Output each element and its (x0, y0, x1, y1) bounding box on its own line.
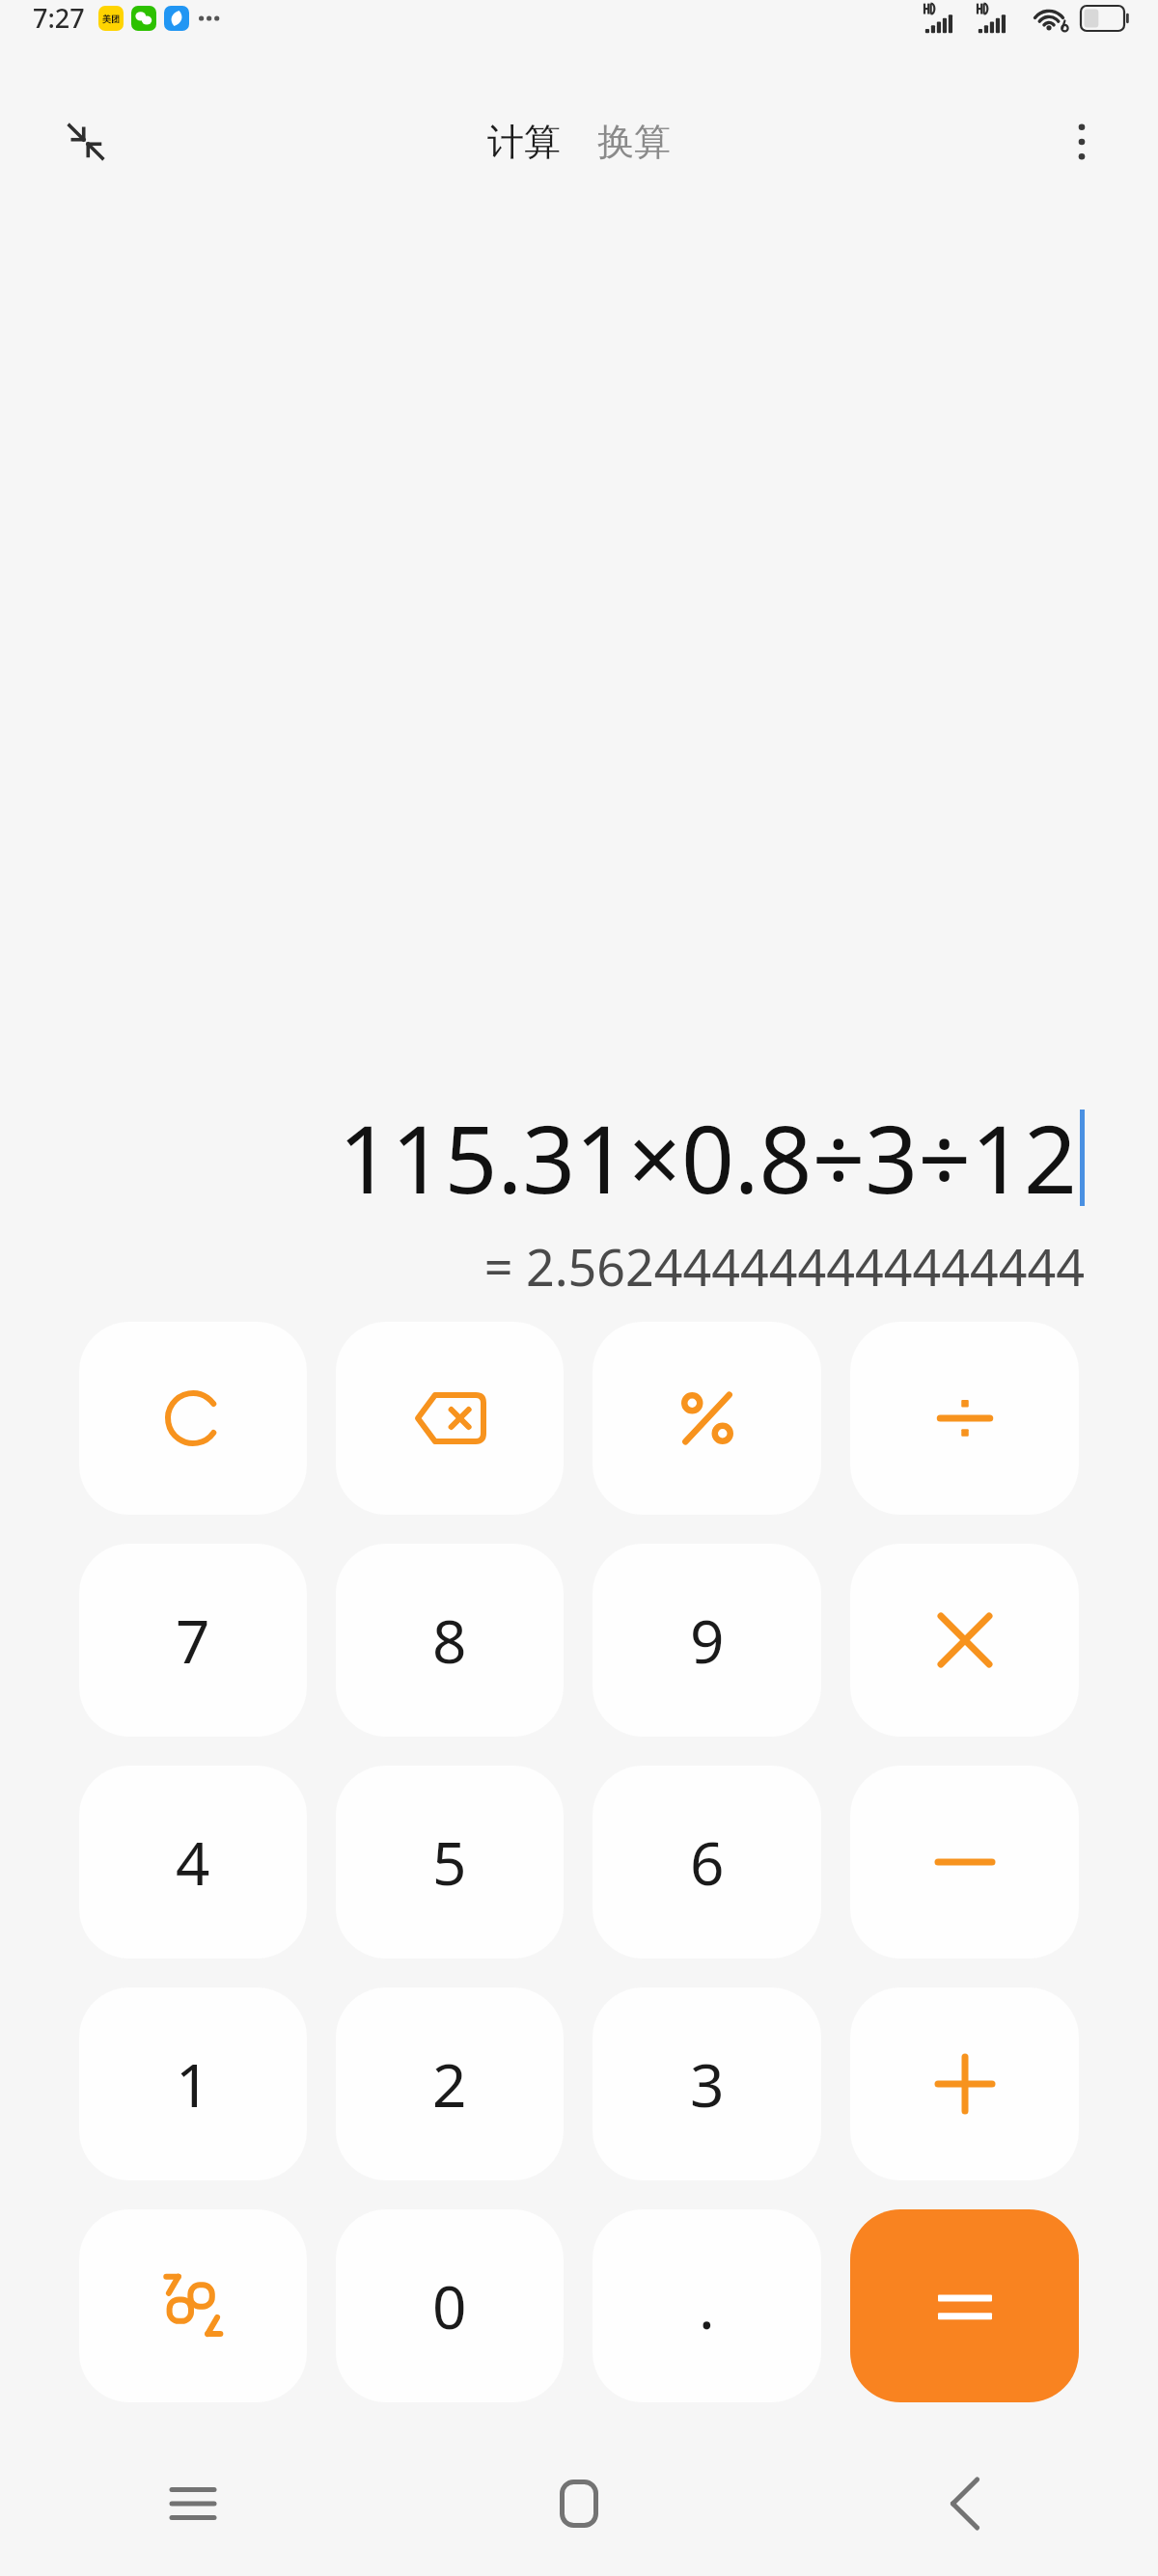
button[interactable]: Collapse (56, 112, 116, 172)
staticText: 0 (432, 2265, 467, 2346)
staticText: 6 (690, 1822, 725, 1903)
button[interactable]: Minus (850, 1766, 1079, 1959)
button[interactable]: Home (386, 2431, 772, 2576)
button[interactable]: 3 (593, 1987, 821, 2180)
button[interactable]: 2 (336, 1987, 564, 2180)
button[interactable]: 9 (593, 1544, 821, 1737)
button[interactable]: Backspace (336, 1322, 564, 1515)
staticText: 计算 (487, 119, 561, 165)
staticText: 115.31×0.8÷3÷12 (338, 1094, 1077, 1220)
staticText: 美团 (102, 14, 120, 24)
button[interactable]: Plus (850, 1987, 1079, 2180)
button[interactable]: 换算 (592, 113, 676, 171)
button[interactable]: Equals (850, 2209, 1079, 2402)
button[interactable]: Unit conversion (79, 2209, 307, 2402)
button[interactable]: 7 (79, 1544, 307, 1737)
staticText: . (699, 2265, 715, 2346)
button[interactable]: 0 (336, 2209, 564, 2402)
button[interactable]: 1 (79, 1987, 307, 2180)
staticText: 3 (690, 2043, 725, 2124)
staticText: 8 (432, 1600, 467, 1681)
staticText: 7:27 (33, 0, 85, 36)
button[interactable]: More options (1052, 112, 1112, 172)
button[interactable]: Recents (0, 2431, 386, 2576)
staticText: 2 (432, 2043, 467, 2124)
button[interactable]: Clear (79, 1322, 307, 1515)
button[interactable]: Back (772, 2431, 1158, 2576)
button[interactable]: 4 (79, 1766, 307, 1959)
staticText: 1 (176, 2043, 210, 2124)
staticText: 7 (176, 1600, 210, 1681)
button[interactable]: Divide (850, 1322, 1079, 1515)
staticText: = 2.562444444444444444 (483, 1232, 1085, 1301)
button[interactable]: 8 (336, 1544, 564, 1737)
button[interactable]: Multiply (850, 1544, 1079, 1737)
staticText: 9 (690, 1600, 725, 1681)
staticText: 换算 (597, 119, 671, 165)
button[interactable]: 6 (593, 1766, 821, 1959)
staticText: 5 (432, 1822, 467, 1903)
button[interactable]: 5 (336, 1766, 564, 1959)
button[interactable]: . (593, 2209, 821, 2402)
button[interactable]: 计算 (482, 113, 566, 171)
button[interactable]: Percent (593, 1322, 821, 1515)
staticText: 4 (176, 1822, 210, 1903)
